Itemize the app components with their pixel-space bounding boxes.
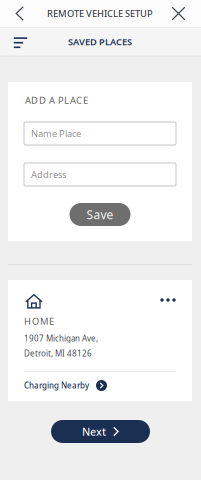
button[interactable]: Back <box>4 0 35 27</box>
button[interactable]: Save <box>69 203 130 226</box>
button[interactable]: Close <box>163 0 194 27</box>
staticText: Next <box>82 424 106 439</box>
staticText: Detroit, MI 48126 <box>24 348 92 359</box>
staticText: AD D A PL AC E <box>25 94 88 106</box>
button[interactable]: More options <box>155 291 181 309</box>
staticText: H O M E <box>24 315 54 327</box>
button[interactable]: Charging Nearby <box>24 371 176 400</box>
staticText: Save <box>86 206 113 222</box>
button[interactable]: SAVED PLACES <box>55 28 145 56</box>
staticText: Name Place <box>31 127 81 140</box>
staticText: REMOTE VEHICLE SETUP <box>47 7 153 20</box>
staticText: Address <box>31 168 66 181</box>
staticText: Charging Nearby <box>24 380 89 391</box>
button[interactable]: Sort <box>0 29 40 57</box>
button[interactable]: Next <box>51 420 150 443</box>
staticText: 1907 Michigan Ave, <box>24 333 98 344</box>
staticText: SAVED PLACES <box>68 35 132 48</box>
